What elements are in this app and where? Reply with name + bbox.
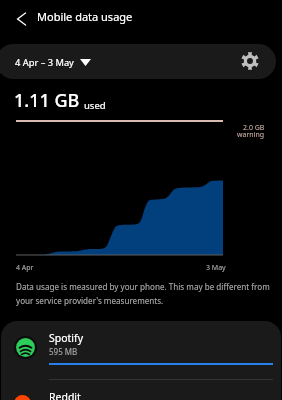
staticText: 3 May — [206, 263, 226, 273]
staticText: 4 Apr – 3 May — [15, 56, 74, 69]
staticText: 4 Apr — [16, 263, 34, 273]
staticText: Data usage is measured by your phone. Th… — [16, 281, 272, 307]
staticText: Mobile data usage — [37, 9, 133, 24]
staticText: used — [84, 99, 106, 112]
button[interactable]: Settings — [236, 47, 264, 75]
button[interactable]: Back — [0, 0, 37, 35]
staticText: 2.0 GB — [243, 123, 265, 133]
staticText: 1.11 GB — [14, 88, 80, 113]
button[interactable]: 4 Apr – 3 May — [0, 49, 101, 74]
staticText: Spotify — [49, 331, 84, 345]
button[interactable]: Spotify — [1, 321, 281, 379]
button[interactable]: Reddit — [1, 380, 281, 400]
staticText: Reddit — [49, 390, 81, 400]
staticText: warning — [237, 130, 265, 140]
staticText: 595 MB — [49, 346, 78, 357]
